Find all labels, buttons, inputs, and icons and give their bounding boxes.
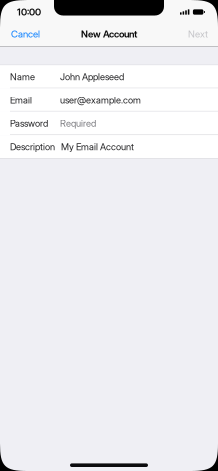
button[interactable]: Name — [0, 65, 218, 88]
button[interactable]: Password — [0, 112, 218, 135]
button[interactable]: Cancel — [0, 21, 48, 47]
staticText: Next — [188, 28, 208, 40]
staticText: Description — [10, 141, 55, 152]
staticText: John Appleseed — [60, 71, 124, 82]
staticText: Required — [60, 118, 96, 129]
staticText: user@example.com — [60, 94, 141, 106]
staticText: Email — [10, 94, 32, 106]
button[interactable]: Next — [180, 21, 218, 47]
staticText: Name — [10, 71, 35, 82]
staticText: My Email Account — [61, 141, 134, 152]
staticText: Cancel — [11, 28, 40, 40]
staticText: 10:00 — [17, 6, 41, 18]
staticText: New Account — [81, 28, 137, 40]
staticText: Password — [10, 118, 48, 129]
button[interactable]: Email — [0, 88, 218, 112]
button[interactable]: Description — [0, 135, 218, 158]
